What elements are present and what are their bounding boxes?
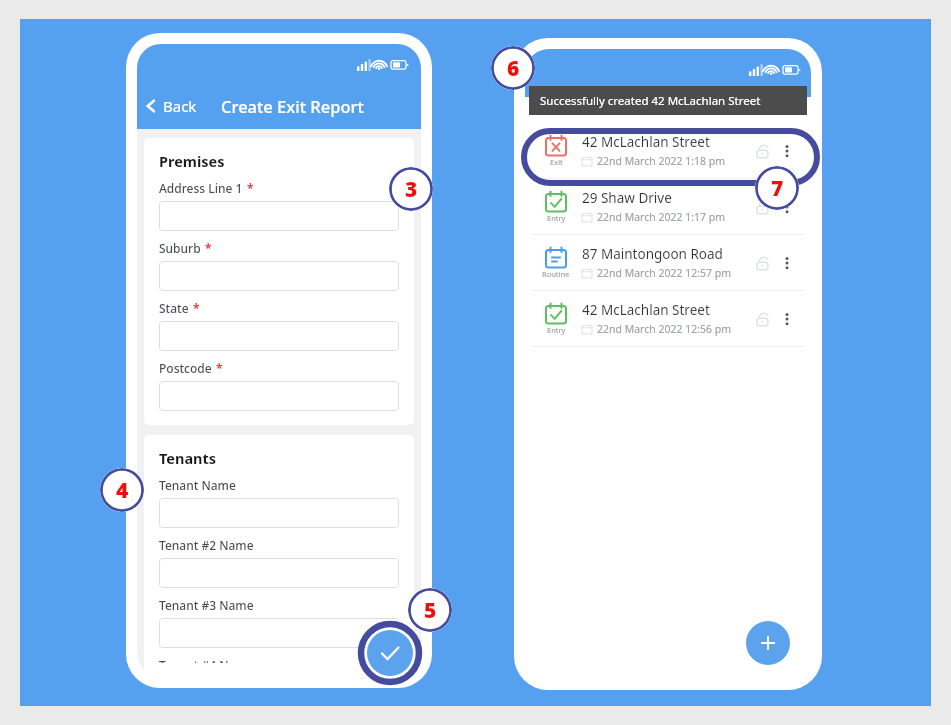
button[interactable]: Back	[137, 84, 203, 128]
staticText: Postcode	[159, 360, 212, 376]
button[interactable]: Add	[746, 621, 790, 665]
staticText: 6	[507, 54, 520, 83]
button[interactable]	[159, 261, 399, 291]
staticText: Address Line 1	[159, 180, 243, 196]
button[interactable]: Unlocked	[749, 250, 775, 276]
button[interactable]: Exit	[525, 123, 811, 178]
button[interactable]	[159, 618, 399, 648]
button[interactable]: More options	[775, 139, 799, 163]
button[interactable]: Unlocked	[749, 306, 775, 332]
button[interactable]: Entry	[525, 291, 811, 346]
staticText: Entry	[547, 213, 566, 223]
button[interactable]	[159, 498, 399, 528]
staticText: Tenant #3 Name	[159, 597, 254, 613]
staticText: *	[205, 240, 212, 256]
staticText: 7	[771, 174, 784, 203]
staticText: 42 McLachlan Street	[582, 133, 710, 151]
button[interactable]	[159, 321, 399, 351]
staticText: Entry	[547, 325, 566, 335]
button[interactable]: Submit	[358, 621, 422, 685]
staticText: Premises	[159, 151, 225, 171]
button[interactable]: More options	[775, 195, 799, 219]
staticText: 22nd March 2022 1:17 pm	[597, 210, 726, 224]
button[interactable]: More options	[775, 251, 799, 275]
button[interactable]	[159, 381, 399, 411]
button[interactable]	[159, 558, 399, 588]
button[interactable]: Unlocked	[749, 138, 775, 164]
button[interactable]: Unlocked	[749, 194, 775, 220]
button[interactable]: Routine	[525, 235, 811, 290]
staticText: *	[247, 180, 254, 196]
staticText: 22nd March 2022 12:56 pm	[597, 322, 732, 336]
staticText: 22nd March 2022 12:57 pm	[597, 266, 732, 280]
staticText: 87 Maintongoon Road	[582, 245, 723, 263]
staticText: Exit	[550, 157, 563, 167]
staticText: 22nd March 2022 1:18 pm	[597, 154, 726, 168]
button[interactable]	[159, 201, 399, 231]
staticText: Create Exit Report	[221, 95, 364, 117]
staticText: Routine	[542, 269, 570, 279]
staticText: *	[193, 300, 200, 316]
staticText: 42 McLachlan Street	[582, 301, 710, 319]
staticText: State	[159, 300, 189, 316]
button[interactable]: More options	[775, 307, 799, 331]
staticText: 5	[424, 596, 437, 625]
staticText: Successfully created 42 McLachlan Street	[540, 93, 761, 109]
button[interactable]: Entry	[525, 179, 811, 234]
staticText: Suburb	[159, 240, 201, 256]
staticText: Tenant #4 Name	[159, 657, 254, 663]
staticText: Tenant #2 Name	[159, 537, 254, 553]
staticText: 29 Shaw Drive	[582, 189, 672, 207]
staticText: 3	[405, 175, 418, 204]
staticText: Tenants	[159, 448, 217, 468]
staticText: *	[216, 360, 223, 376]
staticText: Back	[163, 96, 197, 116]
staticText: 4	[116, 476, 129, 505]
staticText: Tenant Name	[159, 477, 236, 493]
